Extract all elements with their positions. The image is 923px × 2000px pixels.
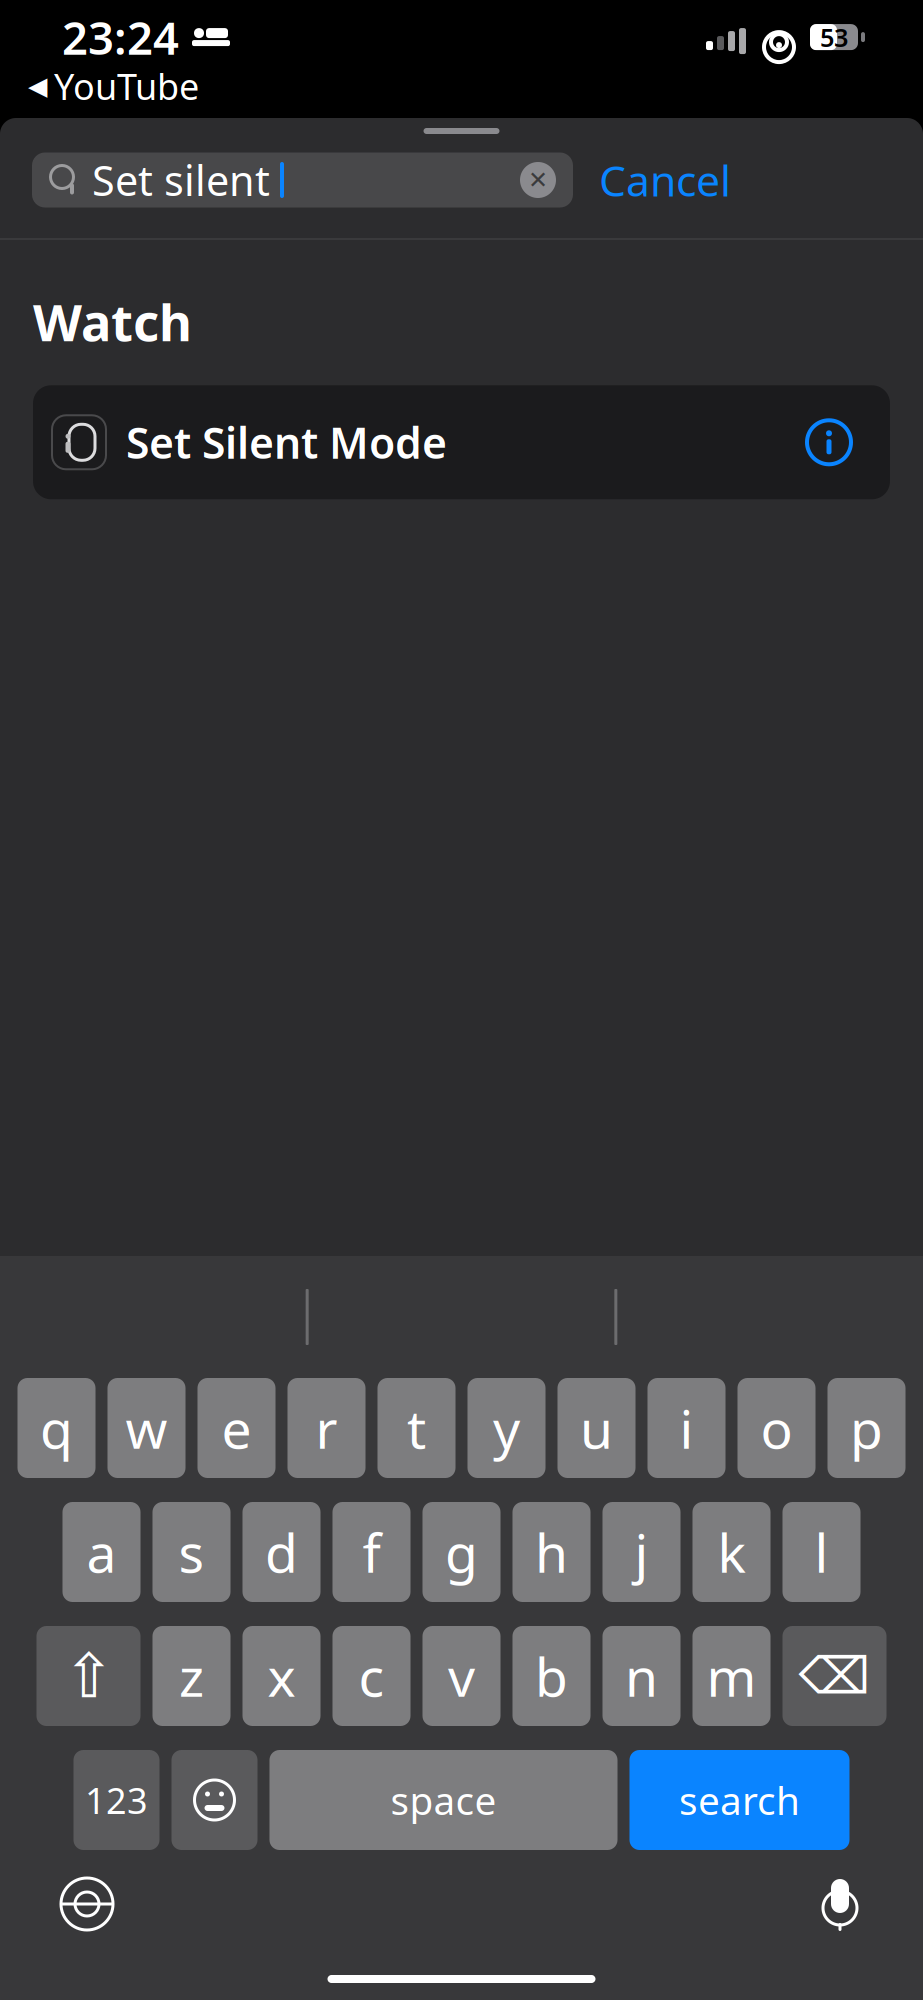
button[interactable]: Dictate xyxy=(815,1875,923,1933)
staticText: k xyxy=(717,1517,745,1587)
staticText: z xyxy=(179,1641,204,1711)
button[interactable]: Switch keyboard xyxy=(0,1875,116,1933)
staticText: q xyxy=(40,1393,73,1463)
button[interactable]: l xyxy=(782,1502,860,1602)
staticText: n xyxy=(625,1641,658,1711)
button[interactable]: Set Silent Mode xyxy=(33,385,890,499)
button[interactable]: v xyxy=(422,1626,500,1726)
staticText: m xyxy=(706,1641,756,1711)
staticText: Set Silent Mode xyxy=(126,414,447,471)
staticText: y xyxy=(493,1393,520,1463)
staticText: a xyxy=(86,1517,116,1587)
button[interactable]: n xyxy=(602,1626,680,1726)
staticText: f xyxy=(362,1517,380,1587)
button[interactable]: p xyxy=(827,1378,905,1478)
button[interactable]: Back to YouTube xyxy=(0,58,199,114)
staticText: ⇧ xyxy=(63,1641,114,1711)
staticText: Watch xyxy=(33,288,192,355)
staticText: x xyxy=(267,1641,295,1711)
button[interactable]: e xyxy=(197,1378,275,1478)
staticText: space xyxy=(390,1774,496,1826)
staticText: d xyxy=(265,1517,298,1587)
staticText: ⌫ xyxy=(798,1647,870,1705)
button[interactable]: space xyxy=(269,1750,617,1850)
staticText: v xyxy=(448,1641,475,1711)
staticText: t xyxy=(407,1393,426,1463)
button[interactable]: j xyxy=(602,1502,680,1602)
button[interactable]: r xyxy=(287,1378,365,1478)
button[interactable]: f xyxy=(332,1502,410,1602)
button[interactable]: Delete xyxy=(782,1626,886,1726)
button[interactable]: q xyxy=(17,1378,95,1478)
button[interactable]: m xyxy=(692,1626,770,1726)
staticText: s xyxy=(178,1517,204,1587)
staticText: 23:24 xyxy=(62,7,179,67)
staticText: u xyxy=(580,1393,613,1463)
button[interactable]: w xyxy=(107,1378,185,1478)
button[interactable]: Emoji xyxy=(171,1750,257,1850)
button[interactable]: 123 xyxy=(73,1750,159,1850)
staticText: p xyxy=(850,1393,883,1463)
staticText: o xyxy=(760,1393,792,1463)
button[interactable]: z xyxy=(152,1626,230,1726)
staticText: j xyxy=(634,1517,648,1587)
staticText: h xyxy=(535,1517,568,1587)
button[interactable]: d xyxy=(242,1502,320,1602)
staticText: b xyxy=(535,1641,568,1711)
button[interactable]: o xyxy=(737,1378,815,1478)
staticText: i xyxy=(679,1393,693,1463)
staticText: r xyxy=(315,1393,337,1463)
staticText: Cancel xyxy=(599,152,731,208)
button[interactable]: c xyxy=(332,1626,410,1726)
button[interactable]: Shift xyxy=(36,1626,140,1726)
button[interactable]: b xyxy=(512,1626,590,1726)
button[interactable]: search xyxy=(629,1750,849,1850)
staticText: c xyxy=(358,1641,384,1711)
staticText: g xyxy=(445,1517,478,1587)
button[interactable]: y xyxy=(467,1378,545,1478)
button[interactable]: h xyxy=(512,1502,590,1602)
button[interactable]: s xyxy=(152,1502,230,1602)
staticText: Set silent xyxy=(92,153,270,207)
button[interactable]: u xyxy=(557,1378,635,1478)
button[interactable]: a xyxy=(62,1502,140,1602)
button[interactable]: t xyxy=(377,1378,455,1478)
staticText: ◀ xyxy=(28,72,47,100)
button[interactable]: Cancel xyxy=(585,149,745,211)
staticText: 53 xyxy=(820,20,848,54)
staticText: YouTube xyxy=(54,62,199,110)
staticText: ✕ xyxy=(528,166,548,194)
staticText: search xyxy=(679,1774,800,1826)
staticText: 123 xyxy=(85,1776,148,1824)
button[interactable]: k xyxy=(692,1502,770,1602)
button[interactable]: x xyxy=(242,1626,320,1726)
button[interactable]: Clear text xyxy=(519,161,573,199)
staticText: w xyxy=(125,1393,167,1463)
button[interactable]: i xyxy=(647,1378,725,1478)
staticText: e xyxy=(221,1393,251,1463)
button[interactable]: g xyxy=(422,1502,500,1602)
staticText: l xyxy=(814,1517,828,1587)
